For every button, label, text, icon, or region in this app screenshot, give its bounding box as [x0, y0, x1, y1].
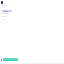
button[interactable]: Continue [3, 58, 18, 61]
button[interactable]: Menu [1, 1, 3, 4]
button[interactable]: Back [1, 59, 2, 61]
button[interactable] [2, 10, 12, 12]
